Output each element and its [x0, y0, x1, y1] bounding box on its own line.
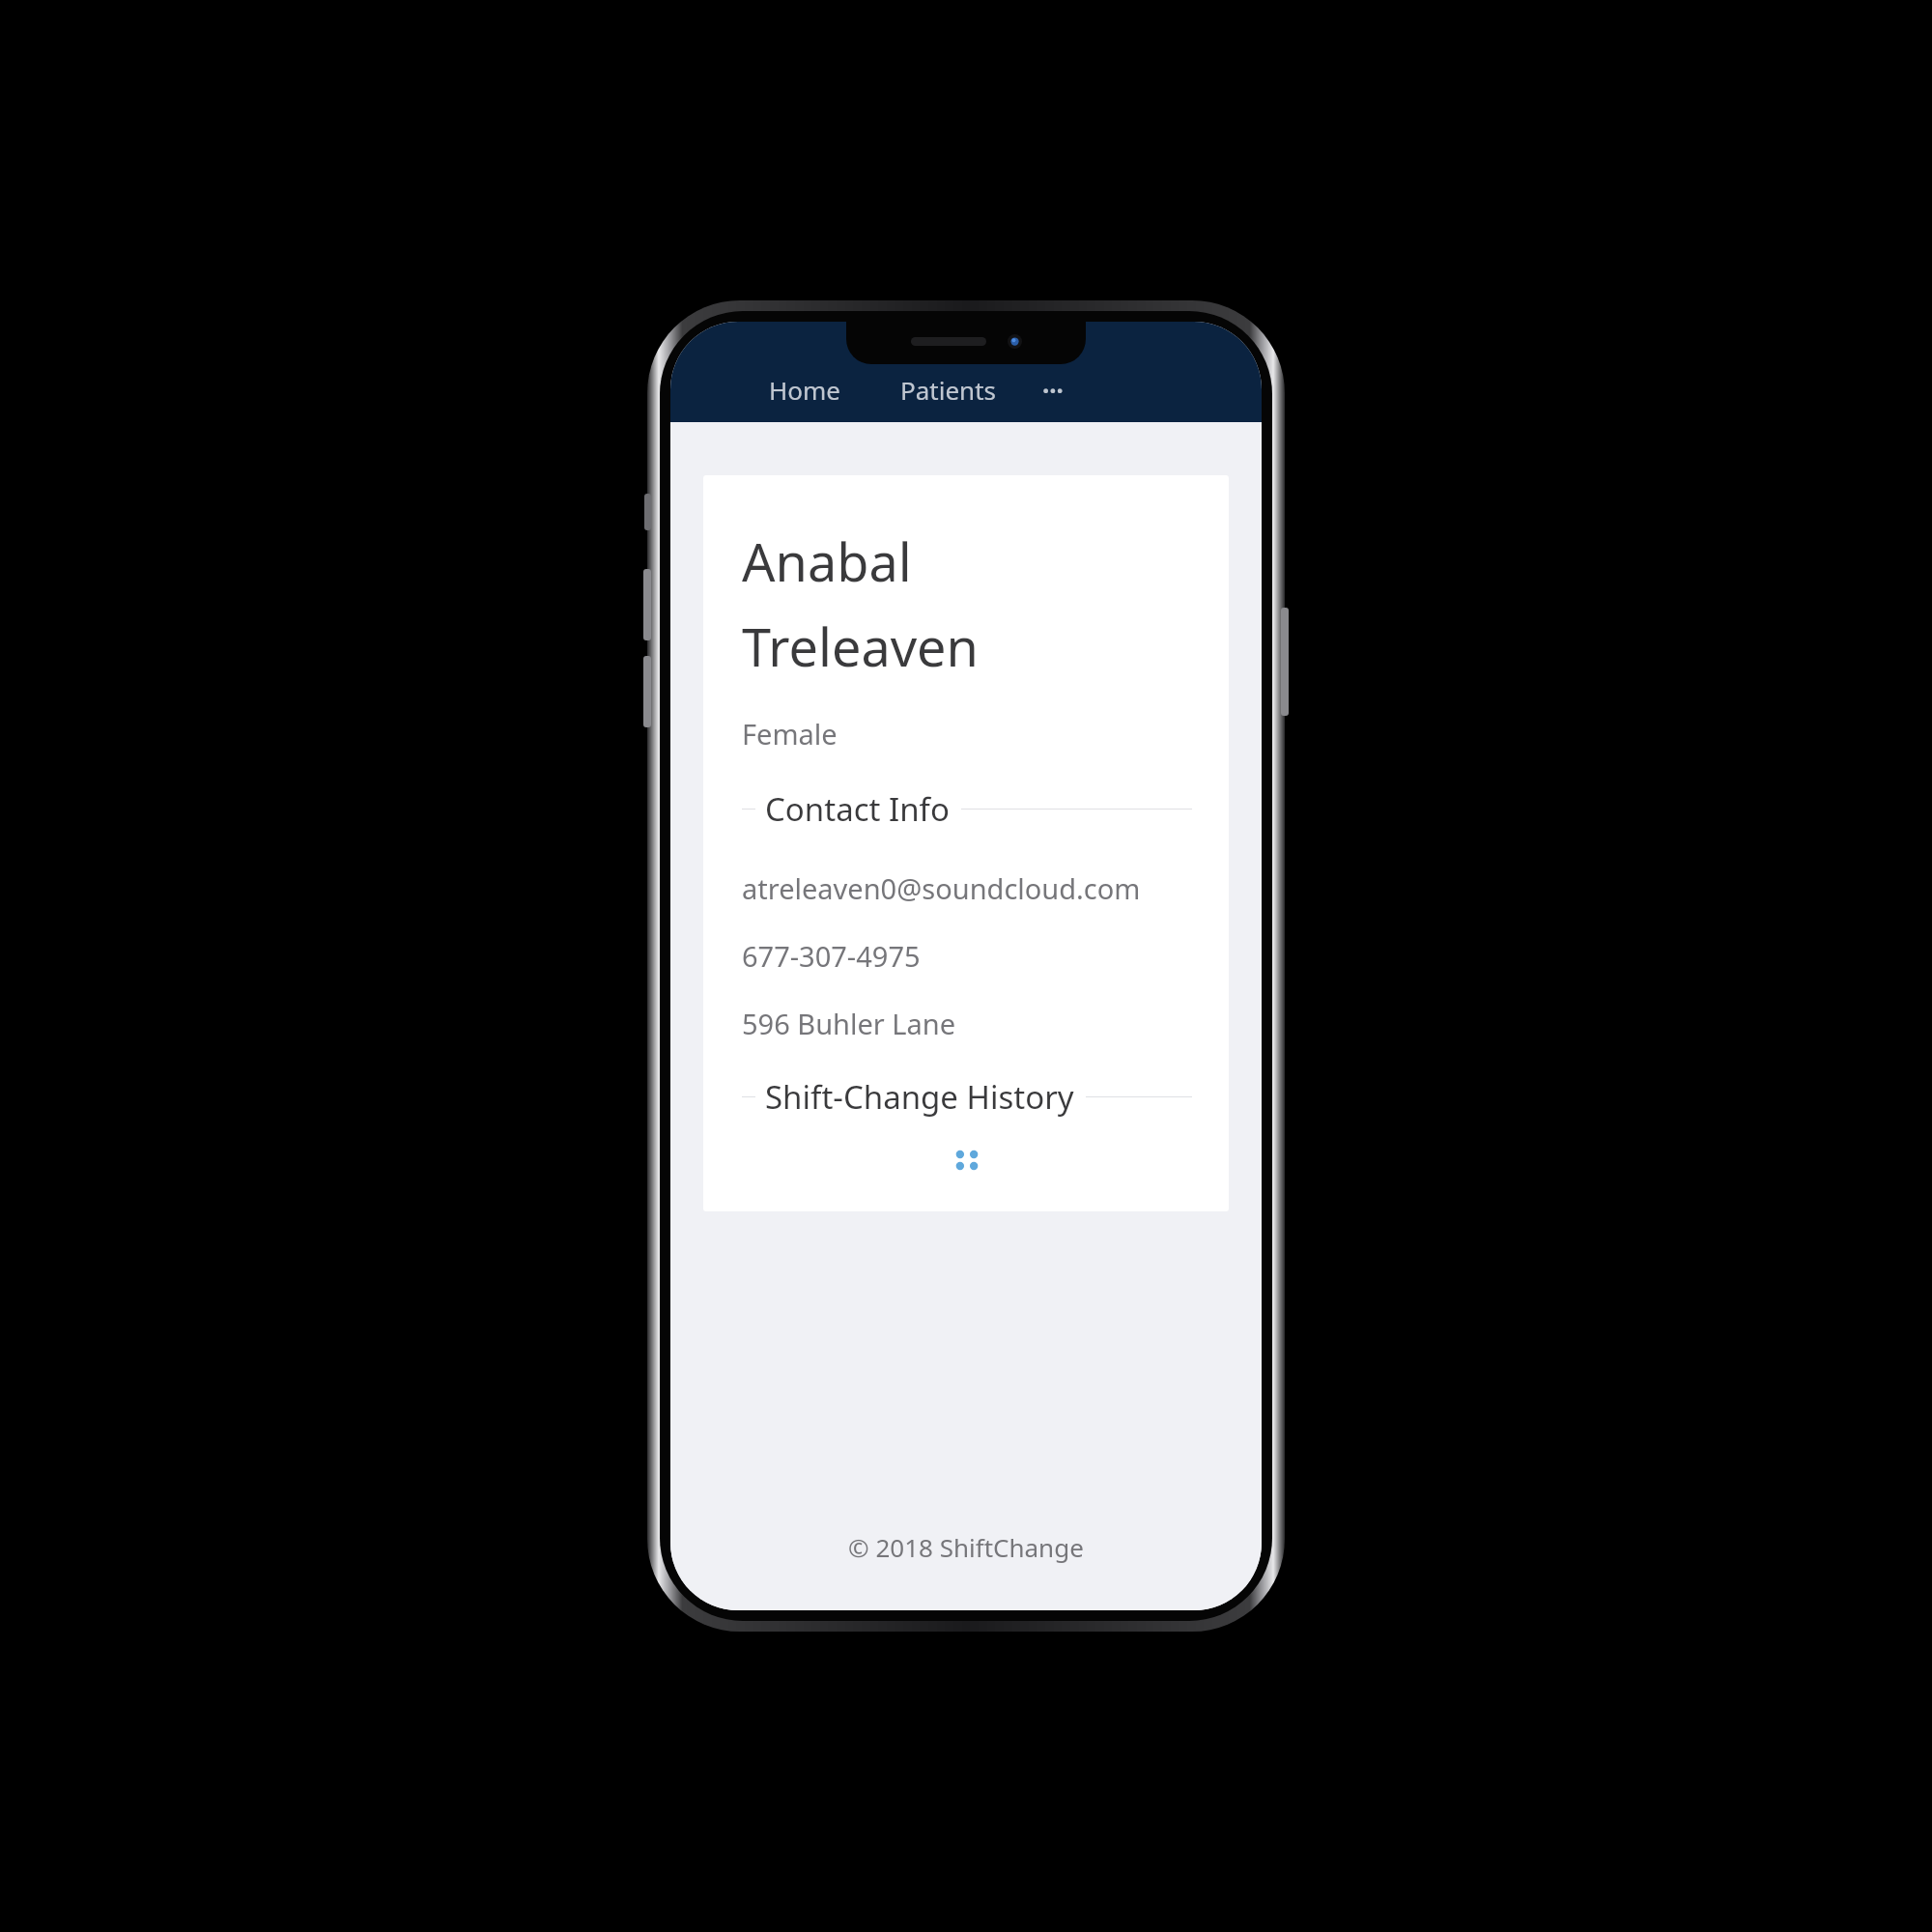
staticText: Female — [742, 715, 838, 753]
staticText: ··· — [1042, 373, 1064, 407]
staticText: Shift-Change History — [765, 1075, 1074, 1119]
staticText: Anabal — [742, 526, 912, 597]
staticText: 677-307-4975 — [742, 937, 921, 975]
staticText: Contact Info — [765, 787, 950, 831]
button[interactable]: Patients — [891, 367, 1006, 412]
button[interactable]: More options — [1033, 367, 1073, 412]
staticText: Treleaven — [742, 611, 979, 682]
staticText: Home — [769, 373, 840, 407]
button[interactable]: Anabal — [703, 475, 1229, 1211]
staticText: atreleaven0@soundcloud.com — [742, 869, 1141, 907]
staticText: Patients — [900, 373, 996, 407]
button[interactable]: Home — [759, 367, 850, 412]
staticText: 596 Buhler Lane — [742, 1005, 956, 1042]
staticText: © 2018 ShiftChange — [848, 1530, 1084, 1564]
